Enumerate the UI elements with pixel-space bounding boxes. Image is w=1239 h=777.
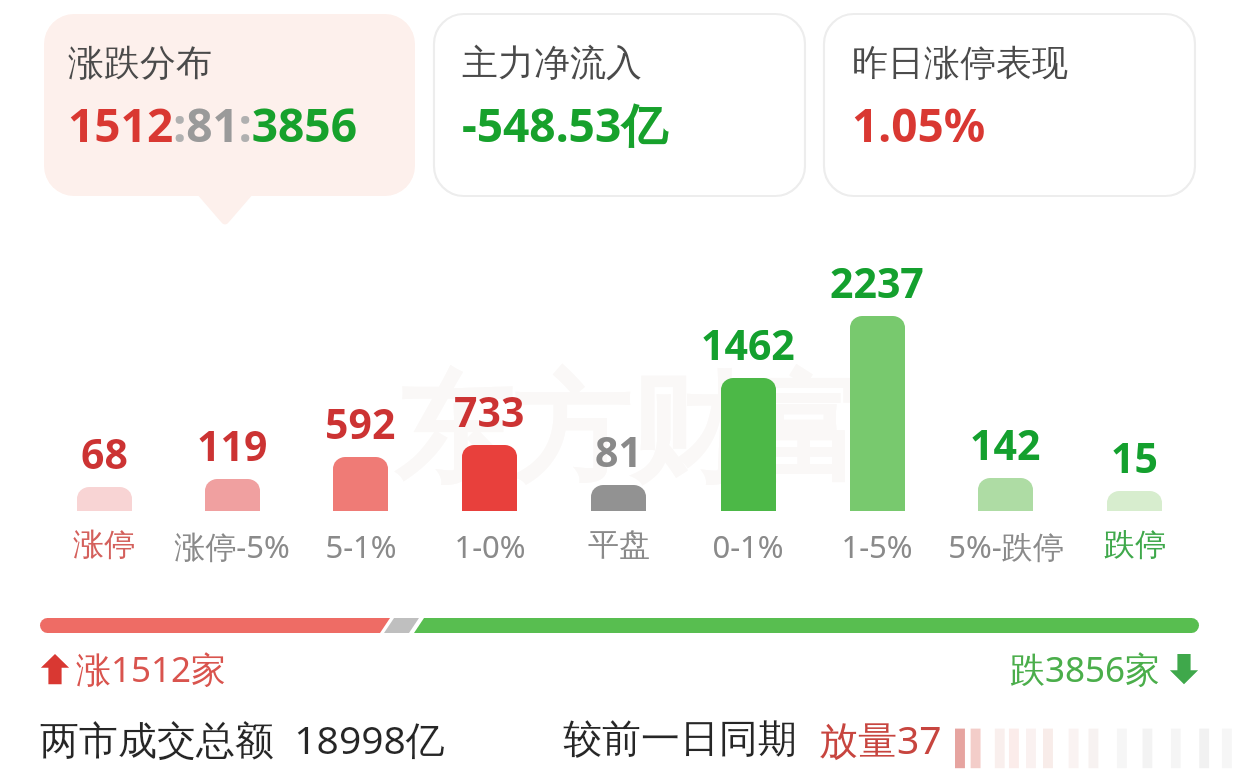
staticText: 15 <box>1111 429 1158 485</box>
staticText: 2237 <box>830 254 924 310</box>
button[interactable]: 涨跌分布 <box>44 14 415 196</box>
other: Up <box>40 652 70 686</box>
staticText: 119 <box>197 417 268 473</box>
staticText: 1-5% <box>841 525 913 566</box>
staticText: 主力净流入 <box>462 40 642 85</box>
staticText: 1512:81:3856 <box>68 93 357 156</box>
staticText: 81 <box>595 423 642 479</box>
staticText: 1.05% <box>852 93 986 156</box>
button[interactable]: 主力净流入 <box>434 14 805 196</box>
staticText: 5-1% <box>325 525 397 566</box>
staticText: 平盘 <box>588 525 650 564</box>
button[interactable]: 昨日涨停表现 <box>824 14 1195 196</box>
staticText: 较前一日同期 <box>563 714 797 763</box>
staticText: 68 <box>81 425 128 481</box>
staticText: 放量37 <box>819 712 942 765</box>
staticText: 跌停 <box>1104 525 1166 564</box>
staticText: 1462 <box>701 316 795 372</box>
other: Down <box>1169 652 1199 686</box>
button[interactable]: Up <box>40 645 227 693</box>
staticText: 涨1512家 <box>76 645 227 693</box>
staticText: 592 <box>325 395 396 451</box>
staticText: 昨日涨停表现 <box>852 40 1068 85</box>
staticText: 涨跌分布 <box>68 40 212 85</box>
staticText: 142 <box>970 416 1041 472</box>
staticText: 1-0% <box>454 525 526 566</box>
staticText: 0-1% <box>712 525 784 566</box>
staticText: 两市成交总额 18998亿 <box>40 712 445 765</box>
staticText: 733 <box>454 383 525 439</box>
staticText: 涨停 <box>73 525 135 564</box>
staticText: 东方财富 <box>394 356 866 505</box>
staticText: 5%-跌停 <box>948 525 1064 566</box>
staticText: -548.53亿 <box>462 93 668 156</box>
staticText: 跌3856家 <box>1010 645 1161 693</box>
button[interactable]: 跌3856家 <box>1010 645 1199 693</box>
staticText: 涨停-5% <box>174 525 290 566</box>
